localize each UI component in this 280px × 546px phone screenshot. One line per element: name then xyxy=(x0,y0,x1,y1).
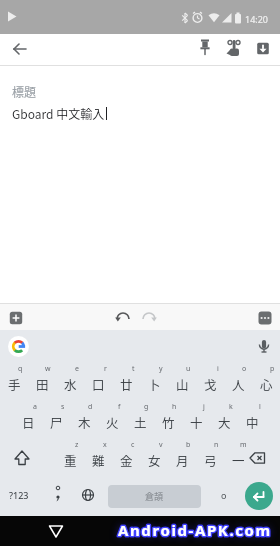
button[interactable]: 口 xyxy=(84,363,112,401)
button[interactable] xyxy=(255,308,275,328)
staticText: 十 xyxy=(190,413,203,431)
button[interactable]: o xyxy=(210,477,238,513)
staticText: o xyxy=(221,489,227,501)
button[interactable]: 日 xyxy=(14,401,42,439)
staticText: Gboard 中文輸入 xyxy=(12,105,105,122)
staticText: k xyxy=(229,402,233,412)
staticText: o xyxy=(242,364,247,374)
staticText: v xyxy=(159,440,163,450)
staticText: p xyxy=(270,364,275,374)
staticText: 廿 xyxy=(120,375,133,393)
button[interactable]: 戈 xyxy=(196,363,224,401)
staticText: 卜 xyxy=(148,375,161,393)
staticText: j xyxy=(203,402,205,412)
button[interactable] xyxy=(8,37,32,61)
button[interactable] xyxy=(251,35,275,61)
staticText: Android-APK.com xyxy=(118,520,272,540)
button[interactable]: 十 xyxy=(182,401,210,439)
staticText: 女 xyxy=(148,451,161,469)
button[interactable] xyxy=(222,35,246,61)
button[interactable] xyxy=(139,307,159,329)
button[interactable]: 火 xyxy=(98,401,126,439)
button[interactable] xyxy=(74,477,102,513)
button[interactable]: 水 xyxy=(56,363,84,401)
staticText: q xyxy=(18,364,23,374)
button[interactable]: 中 xyxy=(238,401,266,439)
button[interactable]: 土 xyxy=(126,401,154,439)
staticText: r xyxy=(104,364,107,374)
button[interactable]: 尸 xyxy=(42,401,70,439)
staticText: Android-APK.com xyxy=(118,520,272,540)
button[interactable]: 一 xyxy=(224,439,252,477)
staticText: u xyxy=(186,364,191,374)
button[interactable] xyxy=(193,35,217,61)
staticText: e xyxy=(75,364,79,374)
button[interactable]: 竹 xyxy=(154,401,182,439)
button[interactable]: 重 xyxy=(56,439,84,477)
staticText: 戈 xyxy=(204,375,217,393)
staticText: 心 xyxy=(260,375,273,393)
button[interactable]: 廿 xyxy=(112,363,140,401)
staticText: 標題 xyxy=(12,83,37,100)
button[interactable]: 難 xyxy=(84,439,112,477)
button[interactable]: 金 xyxy=(112,439,140,477)
staticText: z xyxy=(75,440,79,450)
button[interactable] xyxy=(245,482,273,510)
button[interactable]: 卜 xyxy=(140,363,168,401)
staticText: y xyxy=(159,364,163,374)
button[interactable] xyxy=(252,335,276,359)
staticText: 手 xyxy=(8,375,21,393)
button[interactable]: 大 xyxy=(210,401,238,439)
staticText: b xyxy=(186,440,191,450)
staticText: 土 xyxy=(134,413,147,431)
staticText: 人 xyxy=(232,375,245,393)
staticText: 水 xyxy=(64,375,77,393)
button[interactable] xyxy=(238,439,280,477)
button[interactable]: 心 xyxy=(252,363,280,401)
button[interactable]: 倉頡 xyxy=(108,485,201,508)
button[interactable]: 月 xyxy=(168,439,196,477)
staticText: 中 xyxy=(246,413,259,431)
staticText: 弓 xyxy=(204,451,217,469)
button[interactable] xyxy=(113,307,133,329)
staticText: 一 xyxy=(232,451,245,469)
button[interactable] xyxy=(44,477,72,513)
button[interactable]: 弓 xyxy=(196,439,224,477)
staticText: w xyxy=(45,364,51,374)
button[interactable]: 人 xyxy=(224,363,252,401)
staticText: d xyxy=(88,402,93,412)
staticText: g xyxy=(144,402,149,412)
staticText: f xyxy=(118,402,121,412)
staticText: 竹 xyxy=(162,413,175,431)
staticText: ?123 xyxy=(9,489,29,501)
staticText: 難 xyxy=(92,451,105,469)
staticText: 日 xyxy=(22,413,35,431)
button[interactable]: 田 xyxy=(28,363,56,401)
button[interactable]: Gboard 中文輸入 xyxy=(12,104,192,122)
staticText: t xyxy=(132,364,135,374)
staticText: 金 xyxy=(120,451,133,469)
button[interactable]: 女 xyxy=(140,439,168,477)
button[interactable]: ?123 xyxy=(2,477,36,513)
staticText: l xyxy=(259,402,261,412)
button[interactable] xyxy=(7,335,29,357)
button[interactable]: 山 xyxy=(168,363,196,401)
staticText: i xyxy=(217,364,219,374)
button[interactable] xyxy=(42,517,70,545)
staticText: 重 xyxy=(64,451,77,469)
staticText: a xyxy=(33,402,37,412)
button[interactable] xyxy=(6,308,26,328)
staticText: h xyxy=(172,402,177,412)
staticText: c xyxy=(131,440,135,450)
staticText: m xyxy=(240,440,247,450)
staticText: 尸 xyxy=(50,413,63,431)
staticText: 田 xyxy=(36,375,49,393)
staticText: 口 xyxy=(92,375,105,393)
staticText: x xyxy=(103,440,107,450)
staticText: 山 xyxy=(176,375,189,393)
button[interactable]: 手 xyxy=(0,363,28,401)
button[interactable]: 標題 xyxy=(12,82,132,100)
button[interactable] xyxy=(0,439,44,477)
button[interactable]: 木 xyxy=(70,401,98,439)
staticText: 月 xyxy=(176,451,189,469)
